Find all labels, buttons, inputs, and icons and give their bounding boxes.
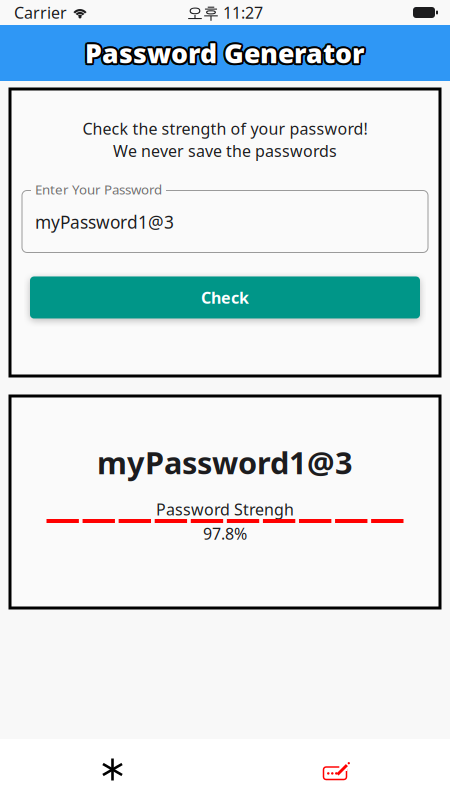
staticText: Password Strengh [156, 499, 294, 520]
staticText: 오후 11:27 [187, 2, 263, 23]
button[interactable]: Password Strength [0, 739, 225, 800]
button[interactable]: Check [30, 276, 420, 318]
staticText: We never save the passwords [113, 140, 337, 161]
staticText: Check the strength of your password! [82, 118, 367, 139]
staticText: Password Generator [85, 37, 365, 73]
button[interactable]: Generate Password [225, 739, 450, 800]
staticText: Password Generator [87, 34, 367, 69]
staticText: Password Generator [83, 34, 363, 69]
staticText: Enter Your Password [35, 180, 162, 198]
staticText: Check [201, 287, 249, 308]
staticText: Password Generator [87, 35, 367, 71]
staticText: Password Generator [83, 35, 363, 71]
staticText: myPassword1@3 [35, 210, 174, 233]
staticText: Password Generator [85, 33, 365, 69]
staticText: 97.8% [203, 523, 247, 544]
staticText: myPassword1@3 [97, 442, 353, 483]
staticText: Password Generator [87, 37, 367, 72]
staticText: Password Generator [85, 35, 365, 71]
staticText: Password Generator [83, 37, 363, 72]
staticText: Carrier [14, 2, 67, 23]
